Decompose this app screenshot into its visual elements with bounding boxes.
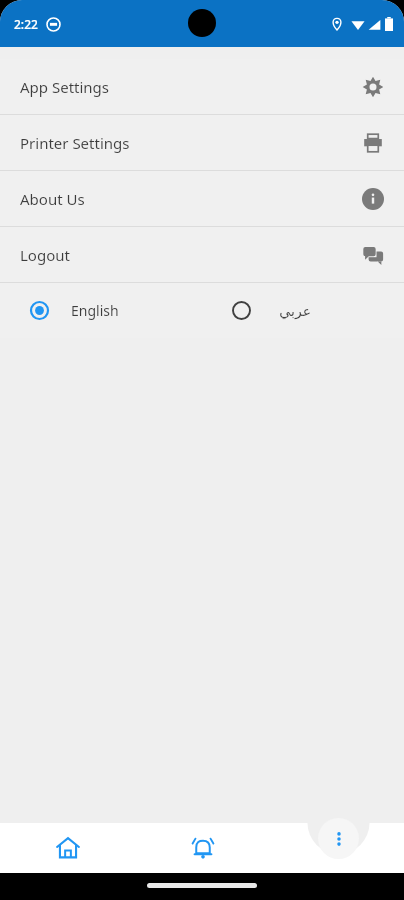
staticText: Printer Settings [20, 133, 130, 153]
button[interactable]: Logout [0, 227, 404, 282]
button[interactable]: Home [0, 823, 135, 873]
button[interactable]: App Settings [0, 59, 404, 114]
staticText: 2:22 [14, 16, 38, 32]
staticText: About Us [20, 189, 85, 209]
staticText: Logout [20, 245, 70, 265]
button[interactable]: More options [318, 818, 359, 859]
staticText: عربي [279, 303, 311, 319]
button[interactable]: Printer Settings [0, 115, 404, 170]
staticText: App Settings [20, 77, 110, 97]
button[interactable]: About Us [0, 171, 404, 226]
staticText: English [71, 301, 119, 320]
button[interactable]: English [0, 283, 200, 338]
button[interactable]: Notifications [135, 823, 270, 873]
button[interactable]: عربي [200, 283, 404, 338]
